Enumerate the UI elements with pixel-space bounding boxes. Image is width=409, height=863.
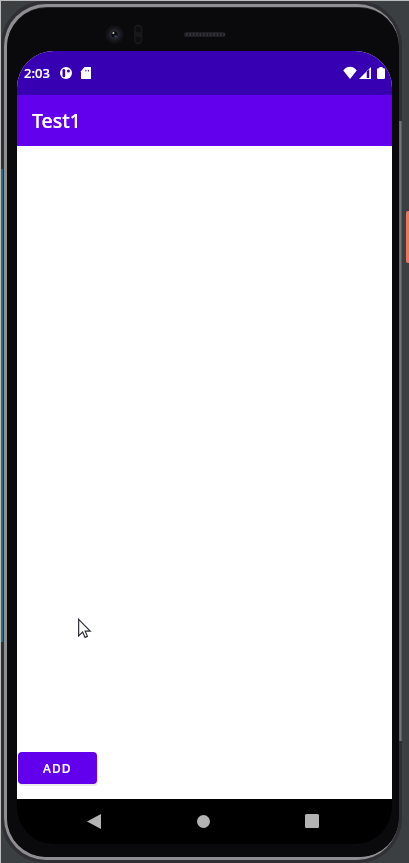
staticText: 2:03: [24, 64, 50, 82]
button[interactable]: Home: [179, 799, 227, 843]
button[interactable]: Recent apps: [288, 799, 336, 843]
button[interactable]: Back: [70, 799, 118, 843]
staticText: Test1: [32, 107, 81, 134]
staticText: ADD: [43, 760, 72, 776]
button[interactable]: ADD: [18, 752, 97, 784]
